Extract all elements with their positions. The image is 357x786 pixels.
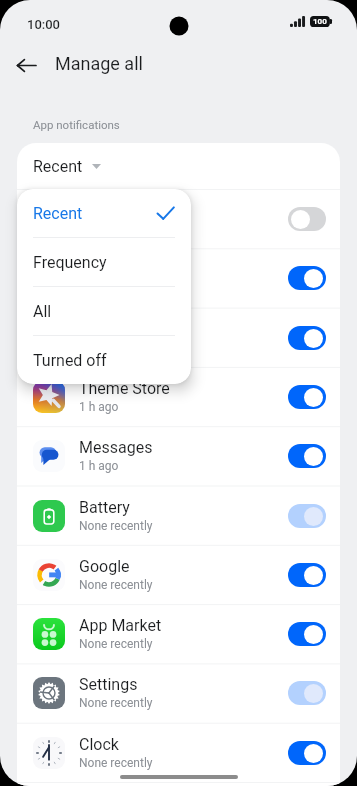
button[interactable]: Clock — [17, 723, 340, 782]
button[interactable]: Theme Store — [17, 248, 340, 307]
staticText: Google — [79, 557, 130, 576]
staticText: None recently — [79, 756, 153, 770]
staticText: App Market — [79, 616, 162, 635]
staticText: Recent — [33, 204, 83, 223]
staticText: Frequency — [33, 253, 107, 272]
button[interactable]: Battery — [17, 486, 340, 545]
staticText: 100 — [313, 17, 327, 26]
button[interactable]: Theme Store — [17, 308, 340, 367]
button[interactable]: Toggle notifications — [288, 741, 326, 765]
staticText: Battery — [79, 498, 130, 517]
button[interactable]: App Market — [17, 604, 340, 663]
button[interactable]: Toggle notifications — [288, 266, 326, 290]
staticText: App notifications — [33, 118, 120, 131]
button[interactable]: Theme Store — [17, 367, 340, 426]
button[interactable]: Google — [17, 545, 340, 604]
button[interactable]: Toggle notifications — [288, 326, 326, 350]
button[interactable]: Toggle notifications — [288, 385, 326, 409]
staticText: Turned off — [33, 351, 107, 370]
button[interactable]: Recent — [17, 143, 340, 189]
staticText: Clock — [79, 735, 119, 754]
button[interactable]: Toggle notifications — [288, 563, 326, 587]
button[interactable]: Settings — [17, 663, 340, 722]
button[interactable]: Instagram — [17, 189, 340, 248]
staticText: Settings — [79, 675, 138, 694]
staticText: None recently — [79, 519, 153, 533]
button[interactable]: Toggle notifications — [288, 681, 326, 705]
staticText: 1 h ago — [79, 459, 119, 473]
staticText: None recently — [79, 696, 153, 710]
staticText: All — [33, 302, 52, 321]
staticText: Messages — [79, 438, 153, 457]
staticText: Theme Store — [79, 379, 170, 398]
button[interactable]: Recent — [17, 189, 191, 237]
button[interactable]: Turned off — [17, 336, 191, 384]
staticText: 10:00 — [27, 17, 61, 32]
staticText: Manage all — [55, 53, 143, 74]
button[interactable]: Back — [13, 52, 40, 79]
staticText: 1 h ago — [79, 400, 119, 414]
staticText: None recently — [79, 578, 153, 592]
button[interactable]: Toggle notifications — [288, 622, 326, 646]
staticText: 2 h ago — [79, 341, 119, 355]
button[interactable]: Frequency — [17, 238, 191, 286]
button[interactable]: Toggle notifications — [288, 504, 326, 528]
button[interactable]: Toggle notifications — [288, 207, 326, 231]
staticText: None recently — [79, 637, 153, 651]
staticText: Recent — [33, 157, 83, 176]
button[interactable]: Messages — [17, 426, 340, 485]
staticText: Recently — [79, 281, 125, 295]
button[interactable]: Toggle notifications — [288, 444, 326, 468]
staticText: Theme Store — [79, 320, 170, 339]
staticText: Theme Store — [79, 260, 170, 279]
staticText: Instagram — [79, 201, 152, 220]
button[interactable]: All — [17, 287, 191, 335]
